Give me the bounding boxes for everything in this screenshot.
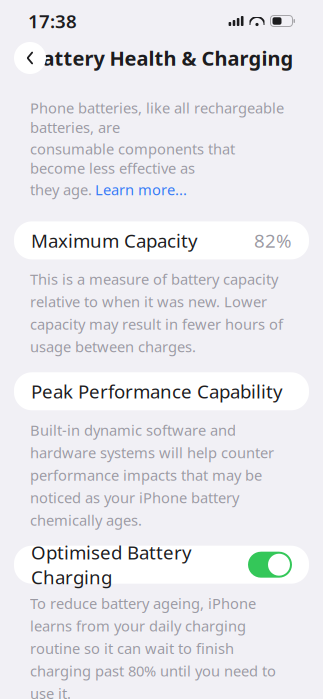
staticText: Learn more...: [95, 180, 187, 199]
button[interactable]: Maximum Capacity: [0, 221, 323, 259]
staticText: Battery Health & Charging: [29, 45, 293, 71]
staticText: This is a measure of battery capacity re…: [30, 269, 283, 356]
staticText: Optimised Battery Charging: [31, 540, 192, 589]
staticText: 82%: [254, 228, 292, 253]
staticText: Built-in dynamic software and hardware s…: [30, 420, 274, 530]
staticText: Peak Performance Capability: [31, 379, 283, 404]
staticText: To reduce battery ageing, iPhone learns …: [30, 594, 276, 699]
button[interactable]: Back: [14, 42, 46, 74]
staticText: 17:38: [28, 9, 77, 33]
button[interactable]: Peak Performance Capability: [0, 372, 323, 410]
button[interactable]: Learn more...: [95, 180, 187, 199]
staticText: consumable components that become less e…: [30, 139, 235, 178]
staticText: Phone batteries, like all rechargeable b…: [30, 98, 284, 137]
button[interactable]: Optimised Battery Charging: [0, 546, 323, 584]
staticText: Maximum Capacity: [31, 228, 198, 253]
staticText: they age.: [30, 180, 92, 199]
